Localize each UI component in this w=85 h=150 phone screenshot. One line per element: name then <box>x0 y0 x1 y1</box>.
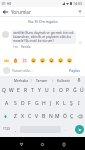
staticText: H <box>42 100 46 107</box>
staticText: Ğ <box>73 87 77 94</box>
staticText: ozetfilet Bunu duymak ve gormek icin cok… <box>13 31 74 43</box>
button[interactable]: React fire <box>12 57 18 63</box>
button[interactable]: React grin <box>57 57 63 63</box>
staticText: , <box>15 127 17 132</box>
staticText: Ö <box>63 113 67 120</box>
button[interactable]: G <box>33 97 40 110</box>
staticText: S <box>14 100 17 107</box>
staticText: L <box>63 100 66 107</box>
button[interactable]: S <box>11 97 19 110</box>
button[interactable]: ?123 <box>0 123 12 135</box>
button[interactable]: Ö <box>61 110 68 123</box>
button[interactable]: W <box>8 84 15 97</box>
staticText: Y <box>38 87 41 94</box>
button[interactable]: Ş <box>68 97 75 110</box>
button[interactable]: L <box>61 97 68 110</box>
button[interactable]: Back <box>15 138 27 150</box>
button[interactable]: React sparkle <box>21 57 27 63</box>
button[interactable]: Tamam <box>32 76 52 84</box>
button[interactable]: Voice input <box>73 76 85 84</box>
staticText: K <box>56 100 60 107</box>
staticText: Via: El Chiringuito <box>28 19 58 24</box>
staticText: U <box>45 87 49 94</box>
button[interactable]: Z <box>11 110 19 123</box>
staticText: ?123 <box>3 127 10 131</box>
staticText: . <box>65 127 67 132</box>
staticText: Ş <box>70 100 73 107</box>
button[interactable]: React grin <box>48 57 54 63</box>
button[interactable]: Paylas <box>67 66 82 75</box>
staticText: T <box>31 87 34 94</box>
button[interactable]: Ü <box>78 84 85 97</box>
button[interactable]: Q <box>0 84 8 97</box>
staticText: Ç <box>70 113 74 120</box>
button[interactable]: D <box>19 97 26 110</box>
button[interactable]: React grin <box>39 57 45 63</box>
button[interactable]: React grin <box>66 57 72 63</box>
button[interactable]: B <box>40 110 47 123</box>
button[interactable]: Home <box>36 138 48 150</box>
staticText: 14:05 <box>73 1 83 6</box>
button[interactable]: Y <box>36 84 43 97</box>
staticText: Merhaba <box>14 78 28 82</box>
button[interactable]: Sort <box>74 7 85 16</box>
button[interactable]: H <box>40 97 47 110</box>
staticText: G <box>35 100 39 107</box>
button[interactable]: R <box>22 84 29 97</box>
button[interactable]: Merhaba <box>10 76 31 84</box>
staticText: Ü <box>80 87 84 94</box>
button[interactable]: P <box>64 84 71 97</box>
staticText: W <box>9 87 14 94</box>
staticText: J <box>50 100 52 107</box>
button[interactable]: F <box>26 97 33 110</box>
staticText: Yanitla <box>21 45 31 49</box>
button[interactable]: Kullanici <box>53 76 73 84</box>
staticText: I <box>78 100 80 107</box>
button[interactable]: E <box>15 84 22 97</box>
staticText: 1sa <box>13 45 18 49</box>
staticText: D <box>21 100 25 107</box>
button[interactable]: Shift <box>0 110 11 123</box>
button[interactable]: I <box>50 84 57 97</box>
button[interactable]: U <box>43 84 50 97</box>
button[interactable]: T <box>29 84 36 97</box>
button[interactable]: O <box>57 84 64 97</box>
staticText: N <box>49 113 53 120</box>
staticText: Yorumlar <box>11 9 31 15</box>
staticText: X <box>21 113 24 120</box>
button[interactable]: V <box>33 110 40 123</box>
button[interactable]: Recent apps <box>58 138 70 150</box>
button[interactable]: React grin <box>30 57 36 63</box>
staticText: C <box>28 113 32 120</box>
staticText: Tamam <box>36 78 48 82</box>
staticText: Paylas <box>69 68 80 73</box>
staticText: F <box>28 100 31 107</box>
button[interactable]: K <box>54 97 61 110</box>
staticText: Z <box>14 113 17 120</box>
button[interactable]: X <box>19 110 26 123</box>
button[interactable]: I <box>75 97 82 110</box>
button[interactable]: , <box>12 123 20 135</box>
staticText: Q <box>2 87 6 94</box>
staticText: P <box>66 87 70 94</box>
staticText: Yorum ekle... <box>12 68 33 73</box>
button[interactable]: React crown <box>3 57 9 63</box>
staticText: I <box>53 87 55 94</box>
staticText: V <box>35 113 39 120</box>
button[interactable]: Backspace <box>75 110 85 123</box>
button[interactable]: Ğ <box>71 84 78 97</box>
button[interactable]: Send <box>75 125 84 134</box>
staticText: B <box>42 113 46 120</box>
button[interactable]: M <box>54 110 61 123</box>
button[interactable]: Ç <box>68 110 75 123</box>
button[interactable]: N <box>47 110 54 123</box>
staticText: M <box>55 113 60 120</box>
staticText: R <box>24 87 28 94</box>
button[interactable]: Like <box>76 38 84 46</box>
button[interactable]: J <box>47 97 54 110</box>
button[interactable]: C <box>26 110 33 123</box>
button[interactable]: A <box>3 97 11 110</box>
button[interactable]: Back <box>0 7 11 16</box>
